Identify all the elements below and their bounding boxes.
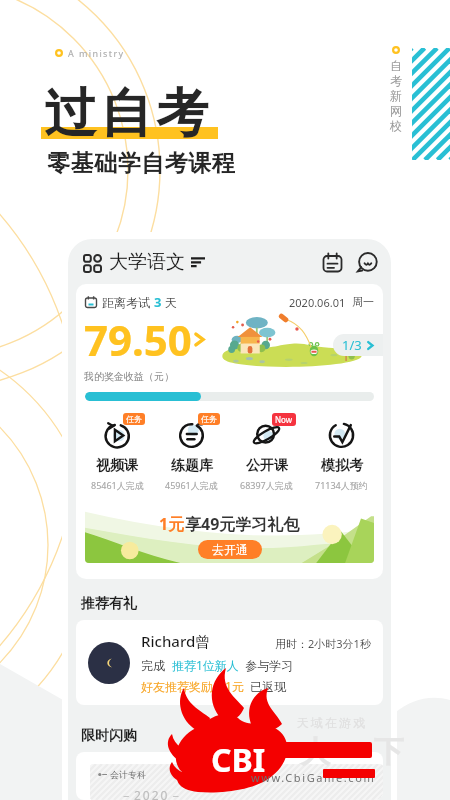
staticText: 79.50 bbox=[84, 311, 192, 368]
staticText: 视频课 bbox=[96, 457, 138, 475]
staticText: 推荐1位新人 bbox=[172, 657, 239, 673]
staticText: 模拟考 bbox=[321, 457, 363, 475]
button[interactable]: 任务 bbox=[154, 418, 229, 491]
staticText: 零基础学自考课程 bbox=[47, 149, 235, 178]
staticText: 过自考 bbox=[42, 81, 210, 147]
staticText: 已返现 bbox=[244, 678, 287, 694]
staticText: 任务 bbox=[126, 414, 142, 424]
staticText: 用时：2小时3分1秒 bbox=[275, 636, 371, 651]
button[interactable]: Sort bbox=[191, 255, 205, 269]
button[interactable]: 1/3 bbox=[333, 334, 383, 356]
staticText: 68397人完成 bbox=[240, 479, 293, 491]
staticText: CBI bbox=[211, 738, 266, 782]
staticText: 公开课 bbox=[246, 457, 288, 475]
staticText: 2020.06.01 bbox=[289, 295, 346, 310]
staticText: Now bbox=[275, 414, 293, 425]
staticText: 71134人预约 bbox=[315, 479, 368, 491]
button[interactable]: 去开通 bbox=[198, 540, 262, 559]
staticText: 好友推荐奖励金1元 bbox=[141, 678, 244, 694]
staticText: 会计专科 bbox=[110, 769, 146, 780]
staticText: 练题库 bbox=[171, 457, 213, 475]
staticText: 1/3 bbox=[342, 336, 362, 354]
staticText: 考 bbox=[390, 73, 402, 88]
staticText: 去开通 bbox=[212, 542, 248, 557]
staticText: 自 bbox=[390, 58, 402, 73]
button[interactable]: Schedule bbox=[318, 248, 346, 276]
staticText: 推荐有礼 bbox=[81, 595, 137, 613]
staticText: A ministry bbox=[68, 47, 125, 59]
button[interactable]: 模拟考 bbox=[304, 418, 379, 491]
button[interactable]: 会计专科 bbox=[76, 752, 383, 800]
staticText: 天 bbox=[162, 294, 178, 310]
staticText: 完成 bbox=[141, 657, 172, 673]
staticText: 1元 bbox=[159, 513, 185, 535]
button[interactable]: Richard曾 bbox=[76, 620, 383, 705]
staticText: 大学语文 bbox=[109, 250, 185, 274]
staticText: 网 bbox=[390, 103, 402, 118]
staticText: 限时闪购 bbox=[81, 727, 137, 745]
staticText: 新 bbox=[390, 88, 402, 103]
staticText: 大 下 bbox=[300, 730, 422, 771]
staticText: 85461人完成 bbox=[91, 479, 144, 491]
staticText: www.CbiGame.com bbox=[251, 770, 376, 785]
button[interactable]: Now bbox=[229, 418, 304, 491]
button[interactable]: Menu bbox=[78, 249, 104, 275]
staticText: 周一 bbox=[352, 295, 374, 309]
staticText: 参与学习 bbox=[239, 657, 294, 673]
staticText: 45961人完成 bbox=[165, 479, 218, 491]
staticText: 校 bbox=[390, 118, 402, 133]
staticText: Richard曾 bbox=[141, 631, 211, 651]
staticText: 天域在游戏 bbox=[296, 715, 366, 730]
staticText: 距离考试 bbox=[102, 294, 154, 310]
button[interactable]: 任务 bbox=[80, 418, 154, 491]
staticText: 我的奖金收益（元） bbox=[84, 370, 174, 383]
staticText: 3 bbox=[154, 293, 162, 311]
staticText: 享49元学习礼包 bbox=[185, 513, 300, 535]
button[interactable]: Chat bbox=[353, 248, 381, 276]
staticText: －2020－ bbox=[120, 787, 184, 800]
staticText: 任务 bbox=[201, 414, 217, 424]
button[interactable]: 1元 bbox=[85, 506, 374, 563]
